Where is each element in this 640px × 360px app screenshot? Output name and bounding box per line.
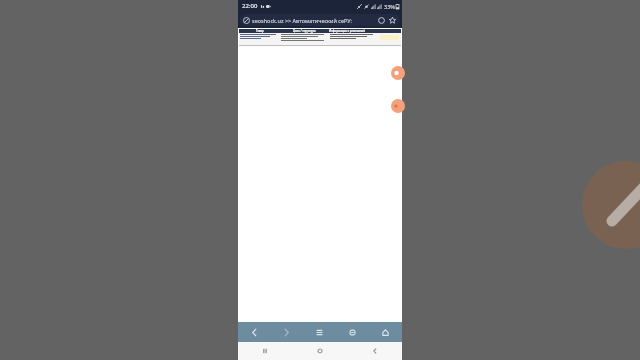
button[interactable]: Home [292, 342, 347, 360]
button[interactable]: seoshock.uz >> Автоматический сеРУ: [240, 14, 400, 26]
staticText: 33% [384, 3, 395, 10]
staticText: Товар [256, 29, 264, 33]
button[interactable]: Back [238, 322, 270, 342]
button[interactable]: Reload [377, 16, 386, 25]
staticText: 22:00 [242, 2, 258, 10]
button[interactable]: Back [347, 342, 402, 360]
staticText: Цена / структура [293, 29, 316, 33]
button[interactable]: Home [369, 322, 402, 342]
staticText: Информация о рекламной компании [329, 29, 378, 33]
button[interactable]: Recents [238, 342, 292, 360]
button[interactable]: Menu [303, 322, 336, 342]
staticText: seoshock.uz >> Автоматический сеРУ: [252, 17, 376, 24]
button[interactable]: Bookmark [388, 16, 397, 25]
button[interactable]: Tabs [336, 322, 369, 342]
button[interactable]: Forward [270, 322, 303, 342]
